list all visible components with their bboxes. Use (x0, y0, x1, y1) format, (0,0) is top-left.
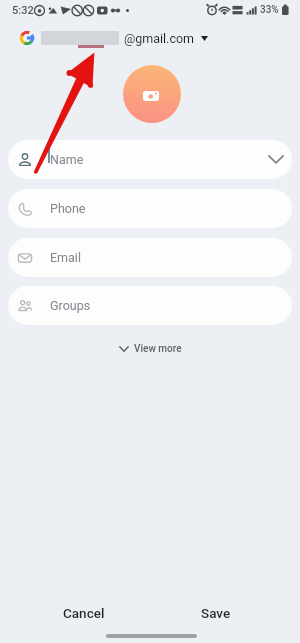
button[interactable]: Save (181, 601, 251, 625)
button[interactable]: Phone (8, 189, 292, 228)
staticText: Phone (50, 201, 86, 216)
staticText: Cancel (63, 605, 105, 621)
staticText: Groups (50, 298, 91, 313)
button[interactable]: Add photo (123, 65, 181, 123)
button[interactable]: @gmail.com (0, 26, 300, 50)
staticText: 33% (260, 4, 279, 16)
button[interactable]: Email (8, 238, 292, 277)
button[interactable]: Name (8, 140, 292, 179)
staticText: View more (134, 343, 182, 355)
button[interactable]: Groups (8, 286, 292, 325)
staticText: 5:32 (12, 4, 34, 17)
staticText: Save (201, 605, 231, 621)
staticText: @gmail.com (124, 31, 195, 46)
staticText: Name (50, 152, 84, 167)
button[interactable]: Cancel (44, 601, 124, 625)
staticText: Email (50, 250, 81, 265)
button[interactable]: View more (113, 340, 188, 358)
